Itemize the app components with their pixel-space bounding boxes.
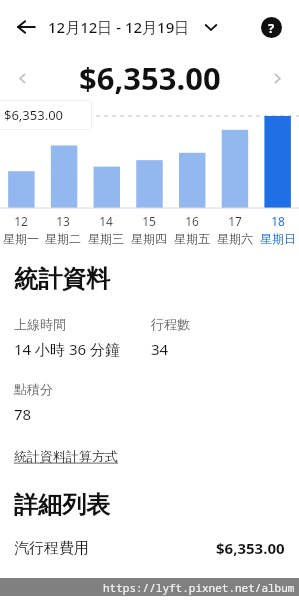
staticText: 統計資料 [14, 264, 110, 294]
staticText: 12月12日 - 12月19日 [48, 17, 190, 37]
button[interactable]: Help [253, 9, 289, 45]
staticText: 星期三 [88, 231, 124, 246]
staticText: 星期六 [217, 231, 253, 246]
staticText: 13 [56, 213, 70, 229]
staticText: ? [268, 19, 275, 37]
staticText: 汽行程費用 [14, 539, 89, 558]
staticText: $6,353.00 [216, 538, 285, 558]
staticText: 14 [99, 213, 113, 229]
staticText: 星期日 [260, 231, 296, 246]
button[interactable]: Next week [255, 56, 299, 100]
staticText: 14 小時 36 分鐘 [14, 339, 121, 359]
staticText: 星期一 [3, 231, 39, 246]
staticText: 星期五 [174, 231, 210, 246]
staticText: https://lyft.pixnet.net/album [103, 580, 295, 595]
staticText: 行程數 [151, 316, 190, 332]
staticText: 星期四 [131, 231, 167, 246]
staticText: 詳細列表 [14, 490, 110, 520]
staticText: 上線時間 [14, 316, 66, 332]
staticText: 星期二 [45, 231, 81, 246]
staticText: 16 [185, 213, 199, 229]
staticText: 78 [14, 404, 32, 424]
button[interactable]: 汽行程費用 [0, 534, 299, 562]
staticText: 12 [14, 213, 28, 229]
staticText: 17 [228, 213, 242, 229]
staticText: $6,353.00 [79, 57, 221, 99]
staticText: 統計資料計算方式 [14, 448, 118, 464]
button[interactable]: Change date range [196, 12, 226, 42]
button[interactable]: Previous week [0, 56, 44, 100]
staticText: 18 [271, 213, 285, 229]
staticText: 點積分 [14, 381, 53, 397]
staticText: 15 [142, 213, 156, 229]
staticText: $6,353.00 [4, 106, 64, 124]
button[interactable]: 統計資料計算方式 [14, 448, 118, 464]
button[interactable]: Back [6, 7, 46, 47]
staticText: 34 [151, 339, 169, 359]
